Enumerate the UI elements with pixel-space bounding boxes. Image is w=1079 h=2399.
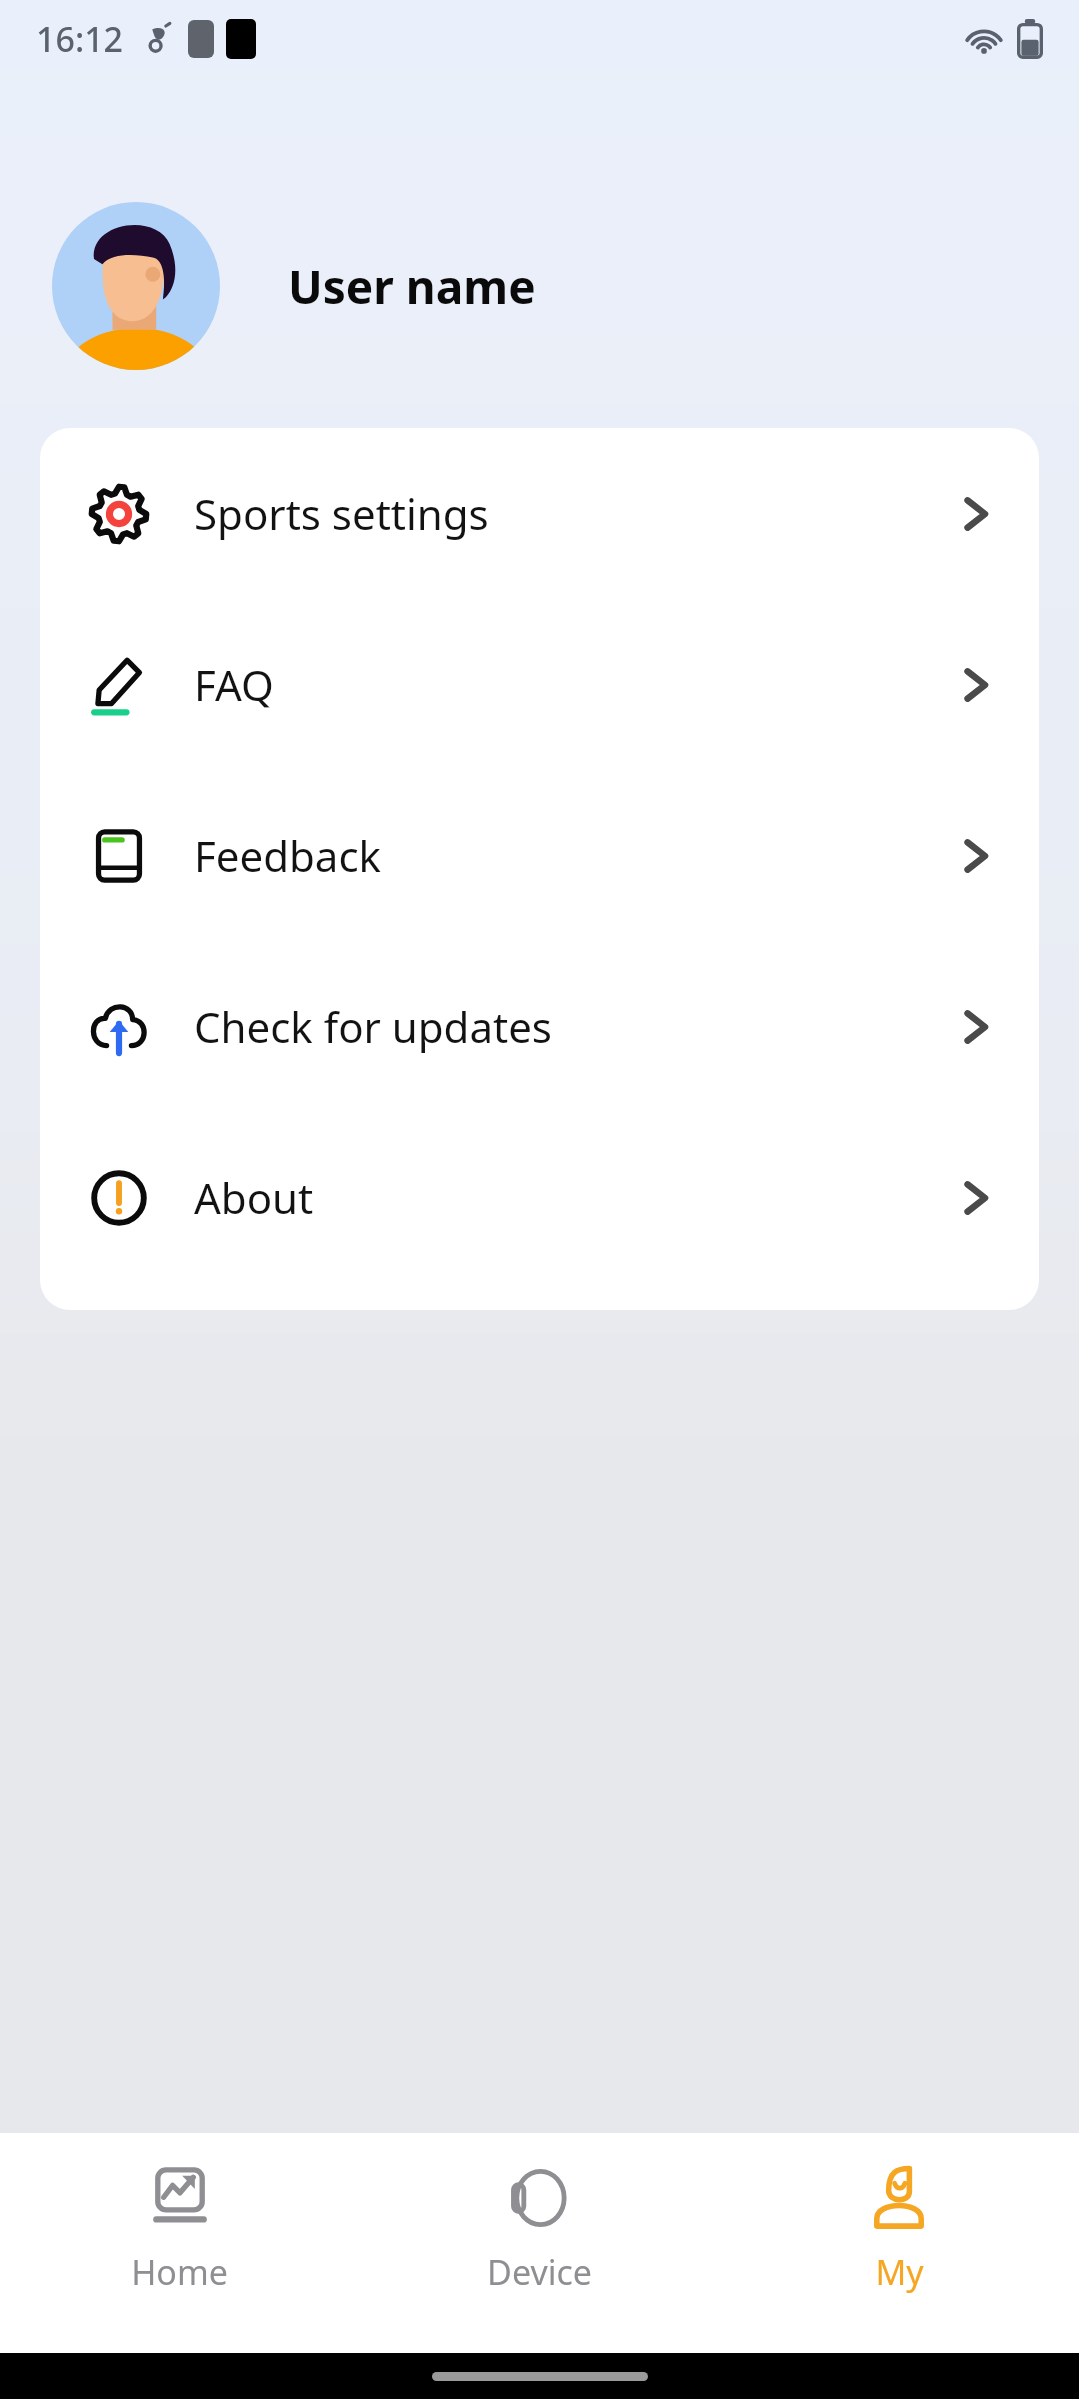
button[interactable]: My xyxy=(719,2161,1079,2353)
button[interactable]: About xyxy=(40,1112,1039,1283)
staticText: Check for updates xyxy=(194,998,552,1055)
button[interactable]: Feedback xyxy=(40,770,1039,941)
button[interactable]: FAQ xyxy=(40,599,1039,770)
staticText: 16:12 xyxy=(36,16,124,62)
staticText: User name xyxy=(288,255,536,318)
staticText: About xyxy=(194,1169,314,1226)
staticText: Home xyxy=(131,2249,228,2295)
button[interactable]: Check for updates xyxy=(40,941,1039,1112)
staticText: Device xyxy=(487,2249,592,2295)
button[interactable]: Home xyxy=(0,2161,359,2353)
staticText: FAQ xyxy=(194,656,274,713)
button[interactable]: Sports settings xyxy=(40,428,1039,599)
staticText: My xyxy=(875,2249,924,2295)
button[interactable]: Device xyxy=(359,2161,719,2353)
button[interactable]: User name xyxy=(52,200,1079,372)
staticText: Sports settings xyxy=(194,485,489,542)
staticText: Feedback xyxy=(194,827,381,884)
